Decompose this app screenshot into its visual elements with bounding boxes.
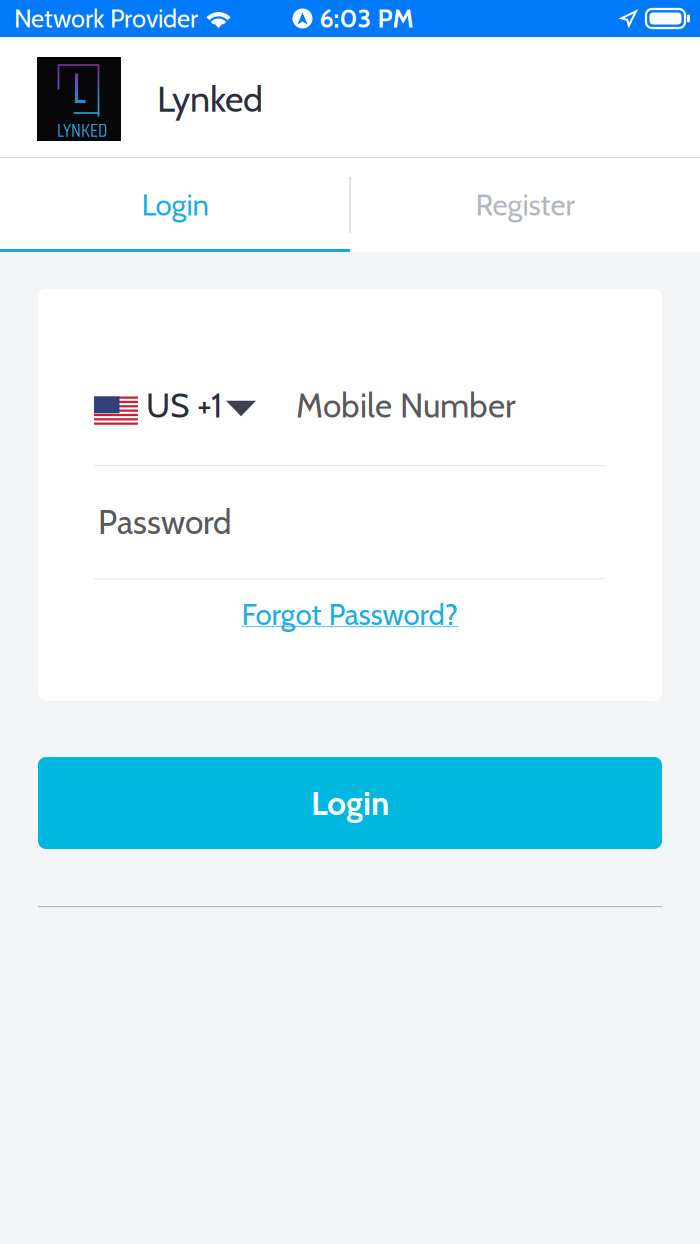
staticText: Mobile Number: [296, 385, 516, 426]
staticText: US +1: [146, 385, 222, 426]
staticText: Network Provider: [14, 3, 198, 34]
staticText: 6:03 PM: [319, 3, 413, 34]
button[interactable]: Forgot Password?: [38, 579, 662, 649]
button[interactable]: Password: [38, 466, 662, 578]
staticText: Lynked: [157, 77, 263, 121]
staticText: Register: [475, 187, 574, 223]
button[interactable]: US +1: [94, 346, 296, 465]
button[interactable]: Login: [38, 757, 662, 849]
staticText: Login: [141, 187, 208, 223]
button[interactable]: Register: [350, 158, 700, 252]
staticText: Password: [98, 502, 232, 542]
staticText: Forgot Password?: [241, 597, 458, 632]
staticText: Login: [311, 783, 389, 823]
staticText: LYNKED: [57, 115, 107, 145]
button[interactable]: Login: [0, 158, 350, 252]
